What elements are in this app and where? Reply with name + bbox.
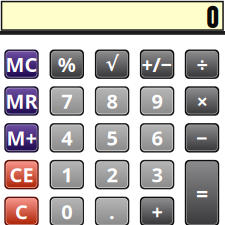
- staticText: 7: [61, 88, 72, 114]
- staticText: =: [196, 179, 208, 207]
- button[interactable]: 2: [95, 160, 129, 189]
- staticText: ×: [196, 88, 207, 114]
- button[interactable]: 6: [140, 123, 174, 152]
- staticText: ÷: [196, 51, 207, 77]
- staticText: 0: [61, 198, 72, 225]
- button[interactable]: +: [140, 197, 174, 225]
- button[interactable]: −: [185, 123, 219, 152]
- button[interactable]: M+: [4, 123, 39, 152]
- staticText: .: [109, 198, 115, 225]
- button[interactable]: %: [50, 49, 84, 79]
- button[interactable]: 0: [50, 197, 84, 225]
- staticText: 2: [107, 161, 118, 188]
- staticText: MR: [5, 88, 37, 114]
- staticText: 8: [107, 88, 118, 114]
- button[interactable]: CE: [4, 160, 39, 189]
- button[interactable]: 4: [50, 123, 84, 152]
- staticText: −: [196, 124, 208, 151]
- button[interactable]: ×: [185, 86, 219, 116]
- button[interactable]: C: [4, 197, 39, 225]
- staticText: +: [152, 198, 163, 225]
- button[interactable]: 8: [95, 86, 129, 116]
- staticText: 0: [206, 2, 218, 37]
- button[interactable]: MR: [4, 86, 39, 116]
- button[interactable]: 5: [95, 123, 129, 152]
- button[interactable]: 1: [50, 160, 84, 189]
- staticText: √: [106, 53, 119, 76]
- staticText: 6: [152, 124, 163, 151]
- staticText: %: [58, 51, 76, 77]
- staticText: +/−: [142, 51, 173, 77]
- staticText: 5: [107, 124, 118, 151]
- button[interactable]: =: [185, 160, 219, 225]
- staticText: M+: [6, 124, 36, 151]
- button[interactable]: 9: [140, 86, 174, 116]
- staticText: 3: [152, 161, 163, 188]
- staticText: 4: [61, 124, 72, 151]
- staticText: 9: [152, 88, 163, 114]
- button[interactable]: ÷: [185, 49, 219, 79]
- staticText: MC: [5, 51, 37, 77]
- staticText: CE: [9, 161, 33, 188]
- button[interactable]: MC: [4, 49, 39, 79]
- button[interactable]: +/−: [140, 49, 174, 79]
- button[interactable]: 7: [50, 86, 84, 116]
- button[interactable]: 3: [140, 160, 174, 189]
- staticText: 1: [61, 161, 72, 188]
- staticText: C: [15, 198, 28, 225]
- button[interactable]: .: [95, 197, 129, 225]
- button[interactable]: √: [95, 49, 129, 79]
